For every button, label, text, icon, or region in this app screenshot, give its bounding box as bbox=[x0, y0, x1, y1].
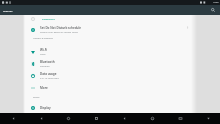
staticText: Display bbox=[40, 106, 51, 110]
button[interactable]: Assist bbox=[202, 113, 214, 124]
button[interactable]: Expand suggestion bbox=[182, 22, 192, 32]
staticText: Settings bbox=[3, 9, 13, 12]
button[interactable]: Display bbox=[0, 102, 220, 113]
staticText: More bbox=[40, 86, 48, 90]
button[interactable]: Screenshot bbox=[174, 113, 186, 124]
staticText: Set Do Not Disturb schedule bbox=[40, 26, 82, 30]
button[interactable]: Suggestions bbox=[25, 15, 192, 24]
button[interactable]: Back bbox=[7, 113, 19, 124]
staticText: Disabled bbox=[40, 65, 50, 68]
staticText: Wi-Fi bbox=[40, 48, 48, 52]
button[interactable]: Back bbox=[35, 113, 47, 124]
staticText: Suggestions bbox=[42, 18, 55, 21]
button[interactable]: Search bbox=[209, 6, 217, 14]
staticText: Bluetooth bbox=[40, 60, 55, 64]
staticText: 10:58 bbox=[213, 1, 219, 4]
button[interactable]: Set Do Not Disturb schedule bbox=[0, 22, 220, 33]
button[interactable]: Home bbox=[62, 113, 74, 124]
staticText: Device bbox=[33, 96, 40, 99]
staticText: Data usage bbox=[40, 72, 57, 76]
staticText: 9.41 of data used bbox=[40, 77, 59, 80]
button[interactable]: Wi-Fi bbox=[0, 44, 220, 55]
button[interactable]: Bluetooth bbox=[0, 56, 220, 67]
button[interactable]: Volume bbox=[146, 113, 158, 124]
button[interactable]: Back bbox=[118, 113, 130, 124]
button[interactable]: More bbox=[0, 82, 220, 93]
staticText: Silence your device at certain times bbox=[40, 31, 78, 34]
button[interactable]: Data usage bbox=[0, 68, 220, 79]
button[interactable]: Recents bbox=[90, 113, 102, 124]
staticText: CDEF bbox=[40, 53, 46, 56]
staticText: Wireless & networks bbox=[33, 37, 53, 40]
